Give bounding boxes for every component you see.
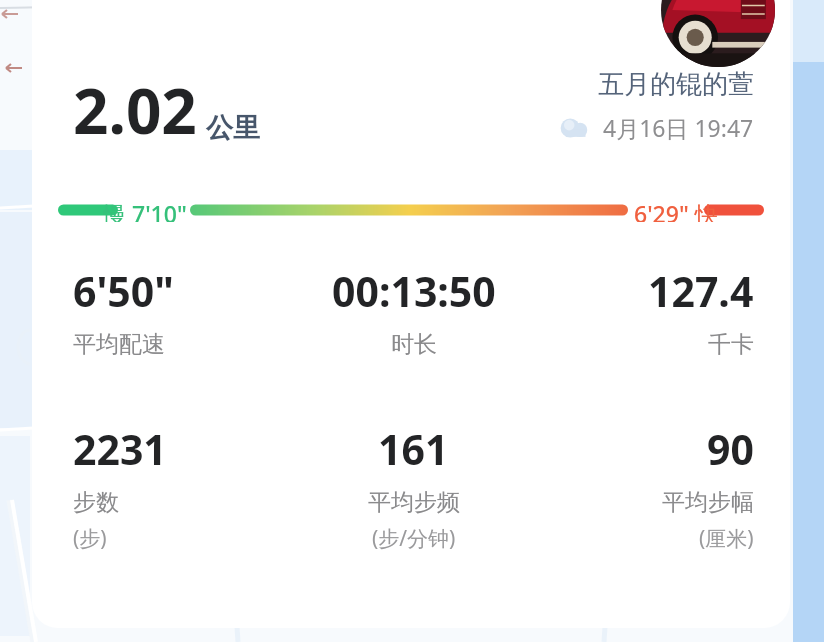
button[interactable] xyxy=(32,0,790,628)
button[interactable]: 2231 xyxy=(73,421,300,553)
staticText: 2.02 xyxy=(73,68,197,152)
staticText: 00:13:50 xyxy=(332,263,496,319)
staticText: 平均配速 xyxy=(73,330,165,359)
button[interactable]: 6'50" xyxy=(73,263,300,359)
staticText: 2231 xyxy=(73,421,167,477)
staticText: 时长 xyxy=(391,330,437,359)
staticText: 公里 xyxy=(206,111,260,145)
staticText: (厘米) xyxy=(699,524,754,553)
button[interactable]: User avatar xyxy=(661,0,775,67)
staticText: 千卡 xyxy=(708,330,754,359)
staticText: 五月的锟的萱 xyxy=(598,68,754,101)
staticText: 平均步频 xyxy=(368,488,460,517)
staticText: (步) xyxy=(73,524,107,553)
button[interactable]: 161 xyxy=(300,421,527,553)
staticText: 步数 xyxy=(73,488,119,517)
staticText: 6'50" xyxy=(73,263,174,319)
button[interactable]: 慢 7'10" xyxy=(32,198,790,222)
staticText: 平均步幅 xyxy=(662,488,754,517)
staticText: 4月16日 19:47 xyxy=(603,112,754,143)
staticText: 127.4 xyxy=(648,263,754,319)
staticText: 90 xyxy=(707,421,754,477)
other: Weather cloud xyxy=(559,116,593,140)
staticText: 慢 7'10" xyxy=(103,198,187,222)
staticText: 6'29" 快 xyxy=(634,198,718,222)
staticText: 161 xyxy=(378,421,449,477)
button[interactable]: 00:13:50 xyxy=(300,263,527,359)
button[interactable]: 127.4 xyxy=(527,263,754,359)
button[interactable]: 90 xyxy=(527,421,754,553)
staticText: (步/分钟) xyxy=(372,524,456,553)
